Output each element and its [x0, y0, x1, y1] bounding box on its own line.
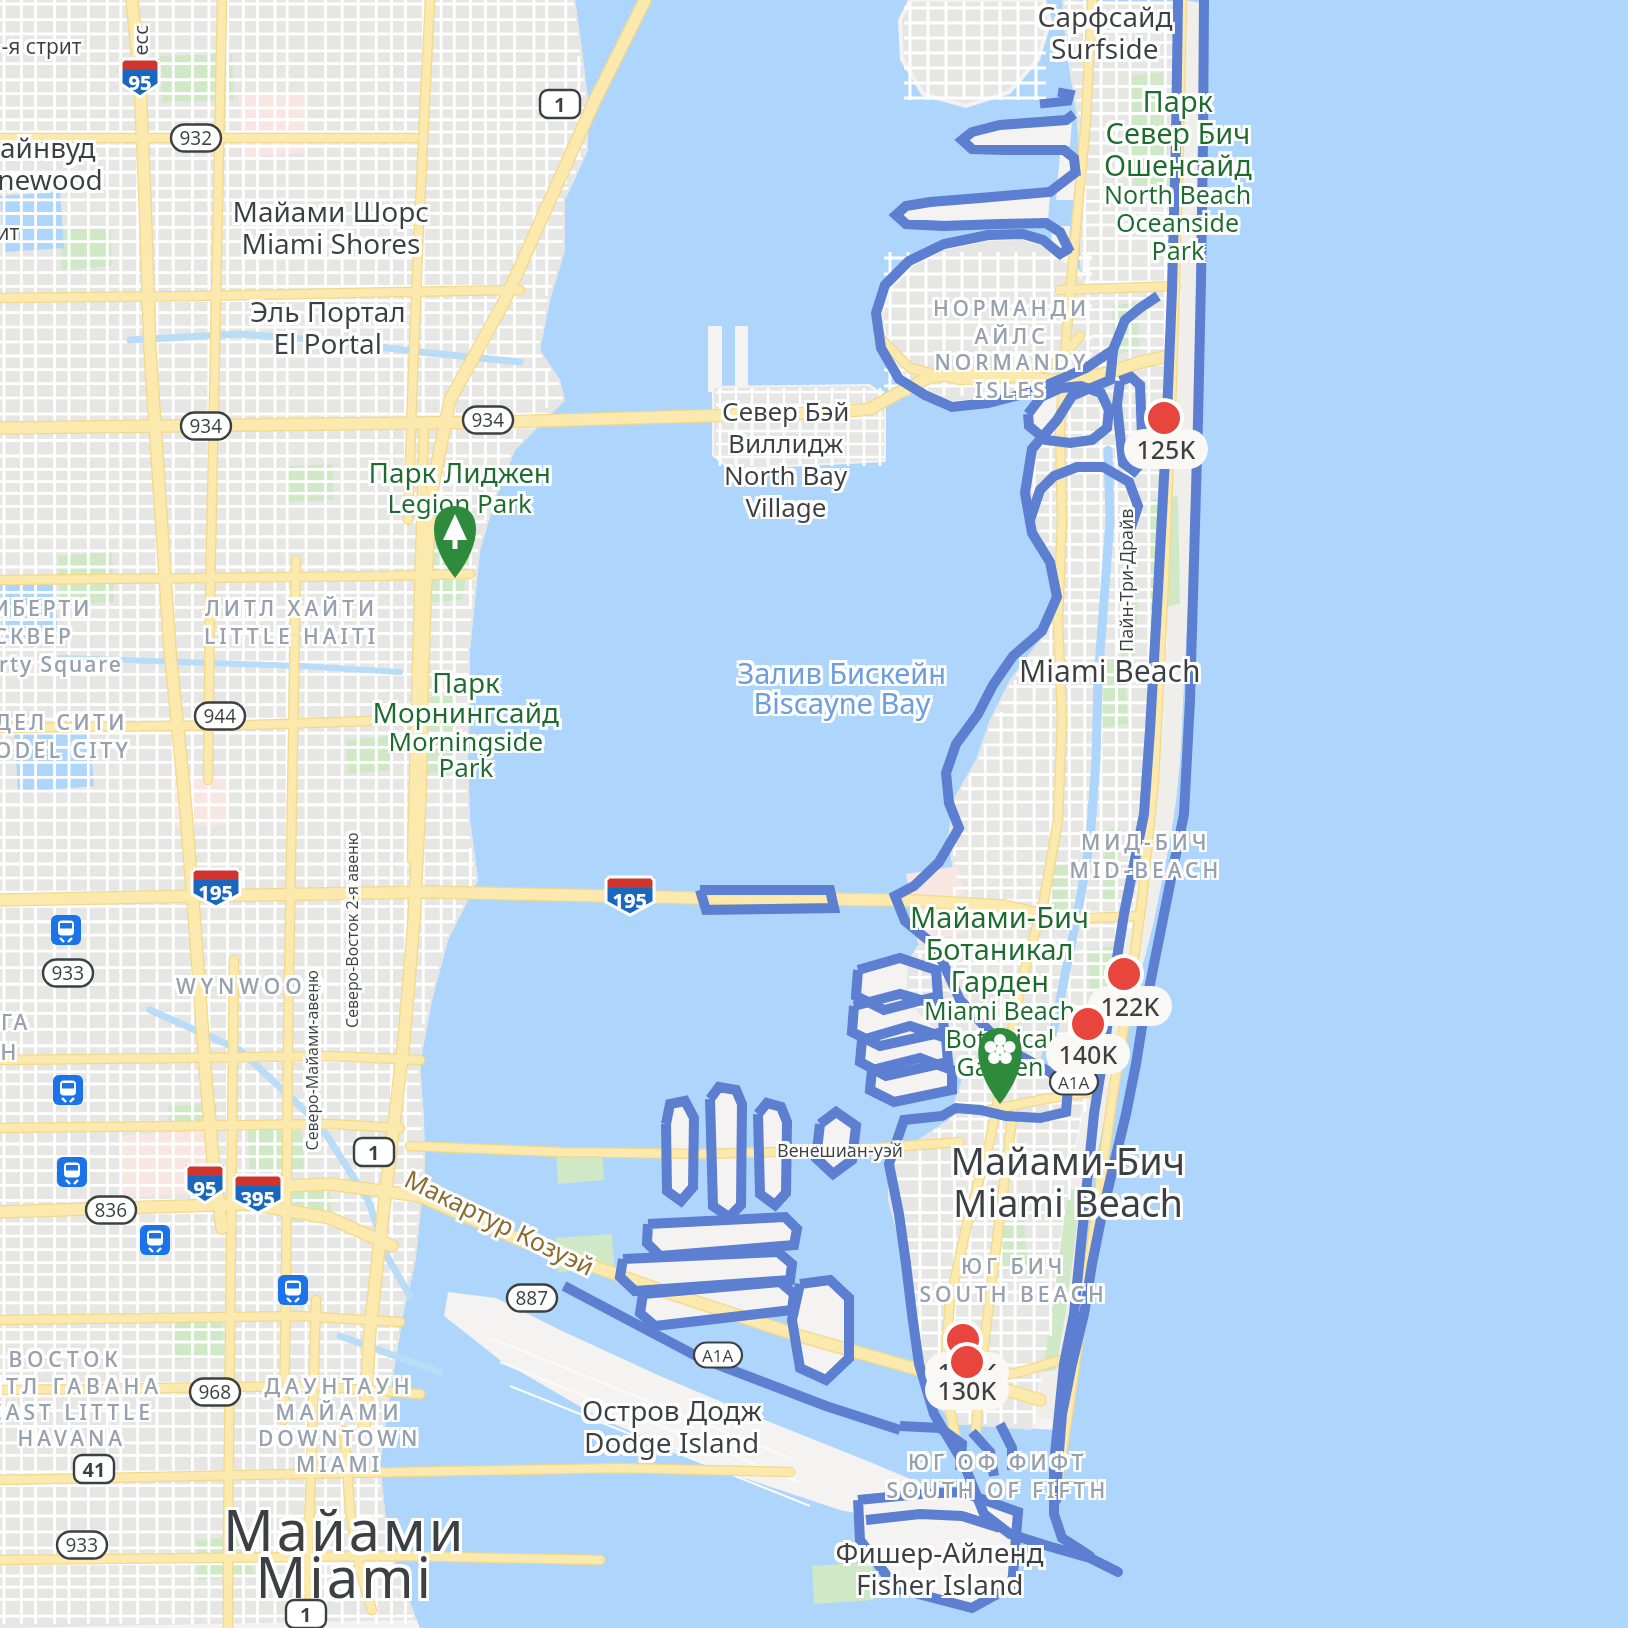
- button[interactable]: [0, 0, 1628, 1628]
